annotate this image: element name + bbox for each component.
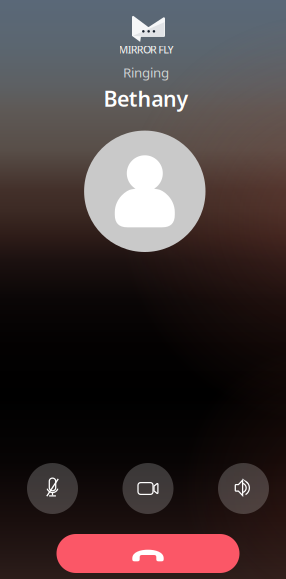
staticText: MIRROR FLY — [119, 42, 173, 57]
staticText: Bethany — [103, 84, 189, 113]
button[interactable]: Speaker — [218, 463, 269, 514]
button[interactable]: Turn camera on — [122, 463, 173, 514]
staticText: Ringing — [123, 64, 169, 81]
button[interactable]: End call — [56, 534, 239, 573]
button[interactable]: Mute — [27, 463, 78, 514]
